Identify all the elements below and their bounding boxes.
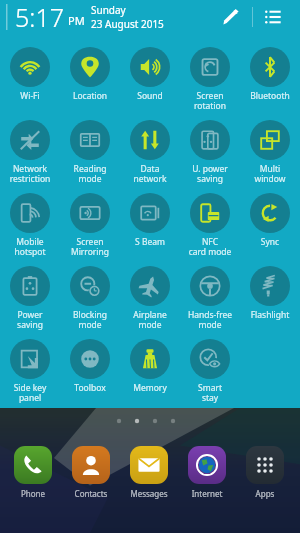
- button[interactable]: Internet: [180, 446, 234, 499]
- staticText: Sound: [120, 90, 180, 102]
- staticText: Side key panel: [0, 382, 60, 403]
- staticText: Blocking mode: [60, 309, 120, 330]
- staticText: Multi window: [240, 163, 300, 184]
- staticText: Flashlight: [240, 309, 300, 321]
- staticText: Hands-free mode: [180, 309, 240, 330]
- button[interactable]: Contacts: [64, 446, 118, 499]
- button[interactable]: Mobile hotspot: [0, 190, 60, 263]
- staticText: Sync: [240, 236, 300, 248]
- button[interactable]: U. power saving: [180, 117, 240, 190]
- staticText: Memory: [120, 382, 180, 394]
- button[interactable]: S Beam: [120, 190, 180, 263]
- button[interactable]: Messages: [122, 446, 176, 499]
- staticText: Data network: [120, 163, 180, 184]
- button[interactable]: Network restriction: [0, 117, 60, 190]
- button[interactable]: Sound: [120, 44, 180, 117]
- button[interactable]: Edit: [214, 0, 248, 34]
- staticText: 23 August 2015: [91, 17, 164, 31]
- button[interactable]: Location: [60, 44, 120, 117]
- button[interactable]: Screen rotation: [180, 44, 240, 117]
- button[interactable]: Airplane mode: [120, 263, 180, 336]
- staticText: Toolbox: [60, 382, 120, 394]
- staticText: Bluetooth: [240, 90, 300, 102]
- button[interactable]: Reading mode: [60, 117, 120, 190]
- staticText: Phone: [6, 488, 60, 499]
- staticText: Sunday: [91, 3, 126, 17]
- staticText: Screen Mirroring: [60, 236, 120, 257]
- staticText: PM: [68, 13, 85, 28]
- staticText: Contacts: [64, 488, 118, 499]
- staticText: Messages: [122, 488, 176, 499]
- staticText: Power saving: [0, 309, 60, 330]
- button[interactable]: Apps: [238, 446, 292, 499]
- button[interactable]: Smart stay: [180, 336, 240, 409]
- button[interactable]: Toolbox: [60, 336, 120, 409]
- button[interactable]: Wi-Fi: [0, 44, 60, 117]
- button[interactable]: NFC card mode: [180, 190, 240, 263]
- button[interactable]: Hands-free mode: [180, 263, 240, 336]
- button[interactable]: Power saving: [0, 263, 60, 336]
- button[interactable]: All settings: [256, 0, 290, 34]
- staticText: NFC card mode: [180, 236, 240, 257]
- staticText: Network restriction: [0, 163, 60, 184]
- staticText: Apps: [238, 488, 292, 499]
- button[interactable]: Phone: [6, 446, 60, 499]
- button[interactable]: Sync: [240, 190, 300, 263]
- staticText: Location: [60, 90, 120, 102]
- button[interactable]: Blocking mode: [60, 263, 120, 336]
- button[interactable]: Side key panel: [0, 336, 60, 409]
- staticText: Mobile hotspot: [0, 236, 60, 257]
- staticText: 5:17: [15, 0, 64, 34]
- staticText: U. power saving: [180, 163, 240, 184]
- button[interactable]: Bluetooth: [240, 44, 300, 117]
- button[interactable]: Data network: [120, 117, 180, 190]
- staticText: Internet: [180, 488, 234, 499]
- button[interactable]: Flashlight: [240, 263, 300, 336]
- staticText: Airplane mode: [120, 309, 180, 330]
- staticText: Smart stay: [180, 382, 240, 403]
- button[interactable]: Memory: [120, 336, 180, 409]
- button[interactable]: Screen Mirroring: [60, 190, 120, 263]
- staticText: Wi-Fi: [0, 90, 60, 102]
- staticText: Screen rotation: [180, 90, 240, 111]
- button[interactable]: Multi window: [240, 117, 300, 190]
- staticText: Reading mode: [60, 163, 120, 184]
- staticText: S Beam: [120, 236, 180, 248]
